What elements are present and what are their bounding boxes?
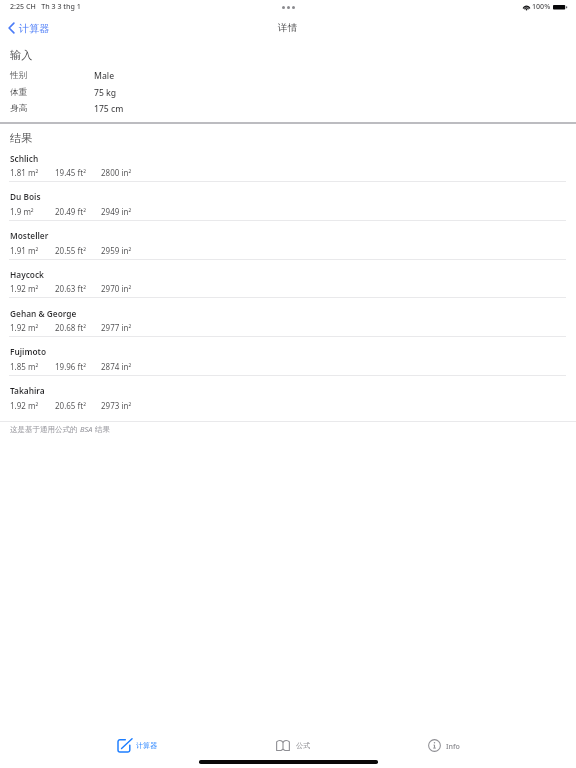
staticText: 1.81 m² (10, 167, 39, 178)
staticText: 身高 (10, 103, 28, 114)
staticText: Takahira (10, 385, 45, 396)
button[interactable] (113, 733, 161, 757)
button[interactable] (0, 68, 576, 85)
staticText: Male (94, 70, 115, 82)
button[interactable] (0, 344, 576, 374)
staticText: 175 cm (94, 103, 124, 115)
staticText: 结果 (10, 131, 33, 145)
staticText: 100% (532, 1, 551, 11)
staticText: 计算器 (136, 741, 158, 750)
staticText: 详情 (278, 22, 298, 34)
button[interactable] (0, 102, 576, 119)
staticText: 19.45 ft² (55, 167, 86, 178)
staticText: 结果 (93, 424, 110, 434)
staticText: Haycock (10, 269, 45, 280)
staticText: 20.63 ft² (55, 283, 86, 294)
staticText: 1.92 m² (10, 283, 39, 294)
staticText: 20.49 ft² (55, 206, 86, 217)
staticText: 2977 in² (101, 322, 132, 333)
staticText: 输入 (10, 48, 33, 62)
staticText: 1.91 m² (10, 245, 39, 256)
staticText: Fujimoto (10, 346, 47, 357)
button[interactable] (0, 150, 576, 180)
staticText: Mosteller (10, 230, 49, 241)
staticText: 这是基于通用公式的 (10, 424, 80, 434)
button[interactable] (0, 86, 576, 103)
staticText: 1.9 m² (10, 206, 34, 217)
staticText: 20.68 ft² (55, 322, 86, 333)
staticText: 性别 (10, 70, 28, 81)
staticText: 1.92 m² (10, 400, 39, 411)
staticText: Schlich (10, 153, 39, 164)
staticText: 20.65 ft² (55, 400, 86, 411)
staticText: 2959 in² (101, 245, 132, 256)
button[interactable]: 计算器 (6, 19, 52, 38)
button[interactable] (0, 305, 576, 335)
button[interactable] (272, 733, 314, 757)
button[interactable] (0, 383, 576, 413)
staticText: 1.92 m² (10, 322, 39, 333)
staticText: 2800 in² (101, 167, 132, 178)
staticText: 2:25 CH Th 3 3 thg 1 (10, 1, 81, 11)
staticText: 1.85 m² (10, 361, 39, 372)
staticText: 计算器 (19, 22, 50, 35)
staticText: 2949 in² (101, 206, 132, 217)
staticText: BSA (80, 424, 93, 434)
staticText: 2970 in² (101, 283, 132, 294)
button[interactable] (0, 189, 576, 219)
staticText: 20.55 ft² (55, 245, 86, 256)
button[interactable] (424, 733, 464, 757)
staticText: Gehan & George (10, 308, 77, 319)
staticText: Info (446, 741, 460, 751)
button[interactable] (0, 228, 576, 258)
staticText: 体重 (10, 87, 28, 98)
staticText: 2874 in² (101, 361, 132, 372)
staticText: 19.96 ft² (55, 361, 86, 372)
button[interactable] (0, 266, 576, 296)
staticText: Du Bois (10, 191, 41, 202)
staticText: 2973 in² (101, 400, 132, 411)
staticText: 75 kg (94, 87, 117, 99)
staticText: 公式 (296, 741, 311, 750)
